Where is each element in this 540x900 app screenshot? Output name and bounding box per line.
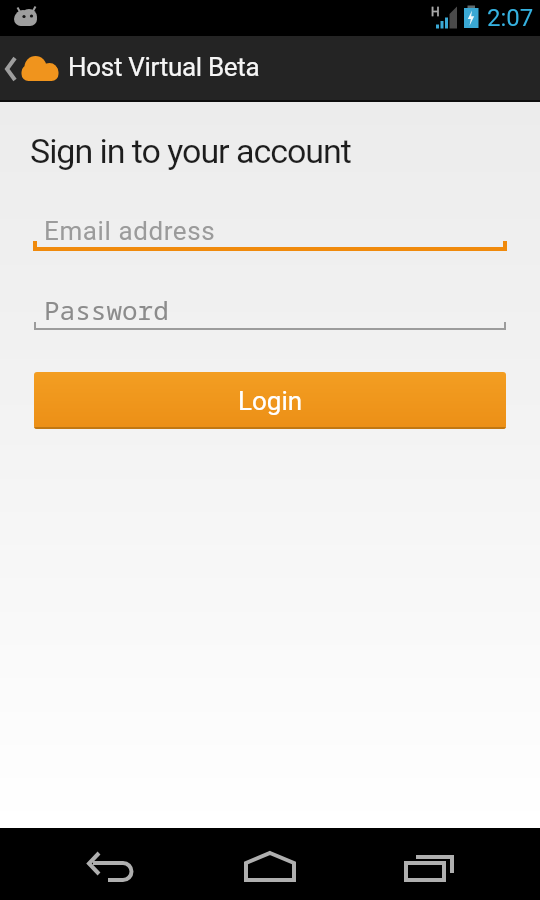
staticText: 2:07 xyxy=(487,4,534,32)
staticText: Host Virtual Beta xyxy=(68,52,260,82)
button[interactable] xyxy=(360,828,480,900)
staticText: Login xyxy=(238,386,303,416)
button[interactable] xyxy=(210,828,330,900)
button[interactable] xyxy=(60,828,180,900)
staticText: Sign in to your account xyxy=(30,131,351,171)
staticText: Password xyxy=(44,292,169,327)
button[interactable]: Login xyxy=(34,372,506,429)
staticText: Email address xyxy=(44,216,216,246)
staticText: H xyxy=(431,5,440,19)
button[interactable]: Host Virtual Beta xyxy=(0,36,540,102)
button[interactable] xyxy=(33,236,507,252)
button[interactable] xyxy=(34,318,506,331)
